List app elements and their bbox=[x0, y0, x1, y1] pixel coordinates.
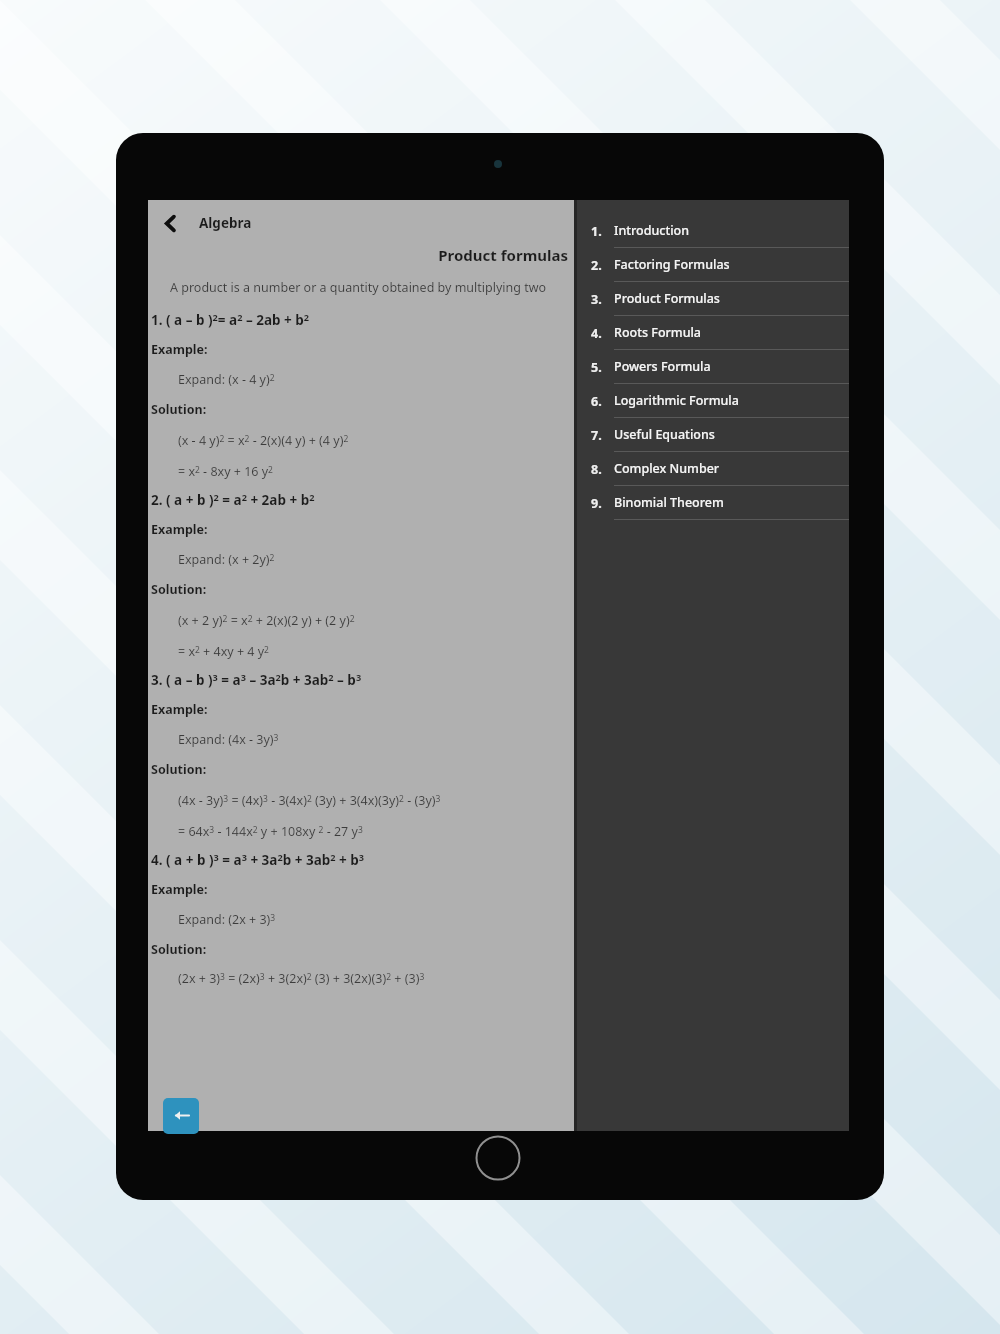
staticText: Roots Formula bbox=[614, 324, 702, 341]
staticText: Factoring Formulas bbox=[614, 256, 730, 273]
staticText: 3. bbox=[591, 291, 614, 308]
staticText: 8. bbox=[591, 461, 614, 478]
staticText: 3. ( a – b )3 = a3 – 3a2b + 3ab2 – b3 bbox=[151, 671, 362, 689]
staticText: Example: bbox=[151, 521, 208, 538]
staticText: Logarithmic Formula bbox=[614, 392, 739, 409]
button[interactable]: 7. bbox=[577, 418, 849, 452]
staticText: Expand: (x - 4 y)2 bbox=[178, 371, 275, 388]
staticText: 4. ( a + b )3 = a3 + 3a2b + 3ab2 + b3 bbox=[151, 851, 365, 869]
staticText: (2x + 3)3 = (2x)3 + 3(2x)2 (3) + 3(2x)(3… bbox=[178, 970, 425, 987]
staticText: 2. bbox=[591, 257, 614, 274]
staticText: (x - 4 y)2 = x2 - 2(x)(4 y) + (4 y)2 bbox=[178, 432, 349, 449]
button[interactable]: 4. bbox=[577, 316, 849, 350]
staticText: Introduction bbox=[614, 222, 690, 239]
staticText: 6. bbox=[591, 393, 614, 410]
staticText: 5. bbox=[591, 359, 614, 376]
staticText: Example: bbox=[151, 701, 208, 718]
button[interactable]: 6. bbox=[577, 384, 849, 418]
staticText: Algebra bbox=[199, 214, 252, 232]
button[interactable]: 2. bbox=[577, 248, 849, 282]
staticText: Useful Equations bbox=[614, 426, 715, 443]
button[interactable]: 8. bbox=[577, 452, 849, 486]
staticText: = x2 + 4xy + 4 y2 bbox=[178, 643, 269, 660]
button[interactable]: Back bbox=[163, 1098, 199, 1134]
staticText: 2. ( a + b )2 = a2 + 2ab + b2 bbox=[151, 491, 315, 509]
button[interactable]: Back bbox=[148, 201, 192, 245]
staticText: Expand: (4x - 3y)3 bbox=[178, 731, 279, 748]
staticText: Powers Formula bbox=[614, 358, 711, 375]
staticText: Example: bbox=[151, 881, 208, 898]
staticText: Expand: (x + 2y)2 bbox=[178, 551, 275, 568]
button[interactable]: 5. bbox=[577, 350, 849, 384]
staticText: Product formulas bbox=[148, 245, 568, 265]
staticText: 7. bbox=[591, 427, 614, 444]
staticText: A product is a number or a quantity obta… bbox=[170, 279, 547, 296]
staticText: (4x - 3y)3 = (4x)3 - 3(4x)2 (3y) + 3(4x)… bbox=[178, 792, 441, 809]
staticText: Product Formulas bbox=[614, 290, 720, 307]
staticText: = x2 - 8xy + 16 y2 bbox=[178, 463, 273, 480]
staticText: = 64x3 - 144x2 y + 108xy 2 - 27 y3 bbox=[178, 823, 363, 840]
staticText: Example: bbox=[151, 341, 208, 358]
staticText: 9. bbox=[591, 495, 614, 512]
button[interactable]: 3. bbox=[577, 282, 849, 316]
button[interactable]: 9. bbox=[577, 486, 849, 520]
staticText: Expand: (2x + 3)3 bbox=[178, 911, 276, 928]
staticText: 1. ( a – b )2= a2 – 2ab + b2 bbox=[151, 311, 310, 329]
staticText: (x + 2 y)2 = x2 + 2(x)(2 y) + (2 y)2 bbox=[178, 612, 355, 629]
staticText: 1. bbox=[591, 223, 614, 240]
button[interactable]: 1. bbox=[577, 214, 849, 248]
staticText: Solution: bbox=[151, 581, 207, 598]
staticText: Complex Number bbox=[614, 460, 720, 477]
staticText: Solution: bbox=[151, 941, 207, 958]
staticText: Solution: bbox=[151, 761, 207, 778]
staticText: Solution: bbox=[151, 401, 207, 418]
staticText: 4. bbox=[591, 325, 614, 342]
staticText: Binomial Theorem bbox=[614, 494, 724, 511]
